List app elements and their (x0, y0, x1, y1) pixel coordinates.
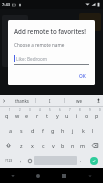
button[interactable]: Hide keyboard (77, 168, 103, 183)
button[interactable]: j (68, 123, 78, 138)
button[interactable]: q (1, 107, 12, 123)
staticText: o (85, 112, 89, 119)
staticText: w (15, 112, 20, 119)
button[interactable]: Voice input (93, 95, 103, 106)
button[interactable]: I (36, 95, 64, 106)
button[interactable]: p (92, 107, 102, 123)
staticText: 3 (29, 108, 31, 112)
button[interactable]: x (27, 138, 38, 153)
button[interactable]: thanks (8, 95, 35, 106)
staticText: u (65, 112, 69, 119)
staticText: 7 (69, 108, 71, 112)
staticText: z (20, 142, 23, 149)
staticText: 6 (59, 108, 61, 112)
staticText: g (51, 127, 55, 134)
staticText: . (80, 157, 82, 164)
staticText: f (42, 127, 44, 134)
button[interactable]: d (27, 123, 38, 138)
button[interactable]: c (38, 138, 48, 153)
button[interactable]: , (16, 154, 25, 167)
button[interactable]: k (78, 123, 88, 138)
staticText: 4 (39, 108, 41, 112)
staticText: c (42, 142, 45, 149)
staticText: n (71, 142, 75, 149)
button[interactable]: f (38, 123, 48, 138)
button[interactable]: t (42, 107, 52, 123)
staticText: a (9, 127, 13, 134)
staticText: 2 (19, 108, 21, 112)
button[interactable]: n (68, 138, 78, 153)
staticText: h (61, 127, 65, 134)
button[interactable]: Backspace (88, 138, 102, 153)
button[interactable]: ?123 (1, 154, 16, 167)
button[interactable]: we (65, 95, 93, 106)
button[interactable]: y (52, 107, 62, 123)
staticText: m (80, 142, 86, 149)
staticText: l (92, 127, 94, 134)
staticText: q (5, 112, 9, 119)
button[interactable]: s (16, 123, 27, 138)
staticText: x (31, 142, 34, 149)
button[interactable]: o (82, 107, 92, 123)
staticText: 9 (89, 108, 91, 112)
button[interactable]: . (77, 154, 85, 167)
staticText: Add remote to favorites! (14, 27, 87, 35)
staticText: ?123 (5, 158, 13, 163)
staticText: 8 (79, 108, 81, 112)
staticText: e (25, 112, 29, 119)
staticText: OK (79, 73, 86, 80)
staticText: 1 (9, 108, 11, 112)
button[interactable]: h (58, 123, 68, 138)
staticText: I (49, 98, 51, 104)
button[interactable]: g (48, 123, 58, 138)
staticText: t (46, 112, 48, 119)
button[interactable]: Enter (90, 157, 98, 165)
button[interactable]: m (78, 138, 88, 153)
staticText: Choose a remote name (14, 42, 65, 48)
button[interactable]: i (72, 107, 82, 123)
staticText: , (20, 157, 22, 164)
button[interactable]: Emoji (25, 154, 34, 167)
staticText: Like: Bedroom (16, 56, 48, 62)
button[interactable]: u (62, 107, 72, 123)
staticText: 7:43 (2, 2, 10, 7)
button[interactable]: e (22, 107, 32, 123)
staticText: b (61, 142, 65, 149)
button[interactable]: l (88, 123, 98, 138)
staticText: y (56, 112, 59, 119)
staticText: 5 (49, 108, 51, 112)
button[interactable]: z (16, 138, 27, 153)
staticText: thanks (15, 98, 29, 104)
staticText: p (95, 112, 99, 119)
staticText: k (82, 127, 85, 134)
staticText: 0 (99, 108, 101, 112)
button[interactable]: OK (76, 71, 89, 82)
button[interactable]: Shift (1, 138, 16, 153)
staticText: v (52, 142, 55, 149)
button[interactable]: Like: Bedroom (14, 54, 89, 65)
staticText: we (76, 98, 82, 104)
staticText: d (31, 127, 35, 134)
button[interactable]: b (58, 138, 68, 153)
staticText: r (36, 112, 39, 119)
button[interactable]: Recents (51, 168, 77, 183)
button[interactable]: More suggestions (0, 95, 8, 106)
button[interactable]: r (32, 107, 42, 123)
button[interactable]: Home (25, 168, 51, 183)
button[interactable]: Back (0, 168, 25, 183)
button[interactable]: a (5, 123, 16, 138)
staticText: s (20, 127, 23, 134)
staticText: i (76, 112, 78, 119)
button[interactable]: w (12, 107, 22, 123)
staticText: j (72, 127, 74, 134)
button[interactable]: v (48, 138, 58, 153)
